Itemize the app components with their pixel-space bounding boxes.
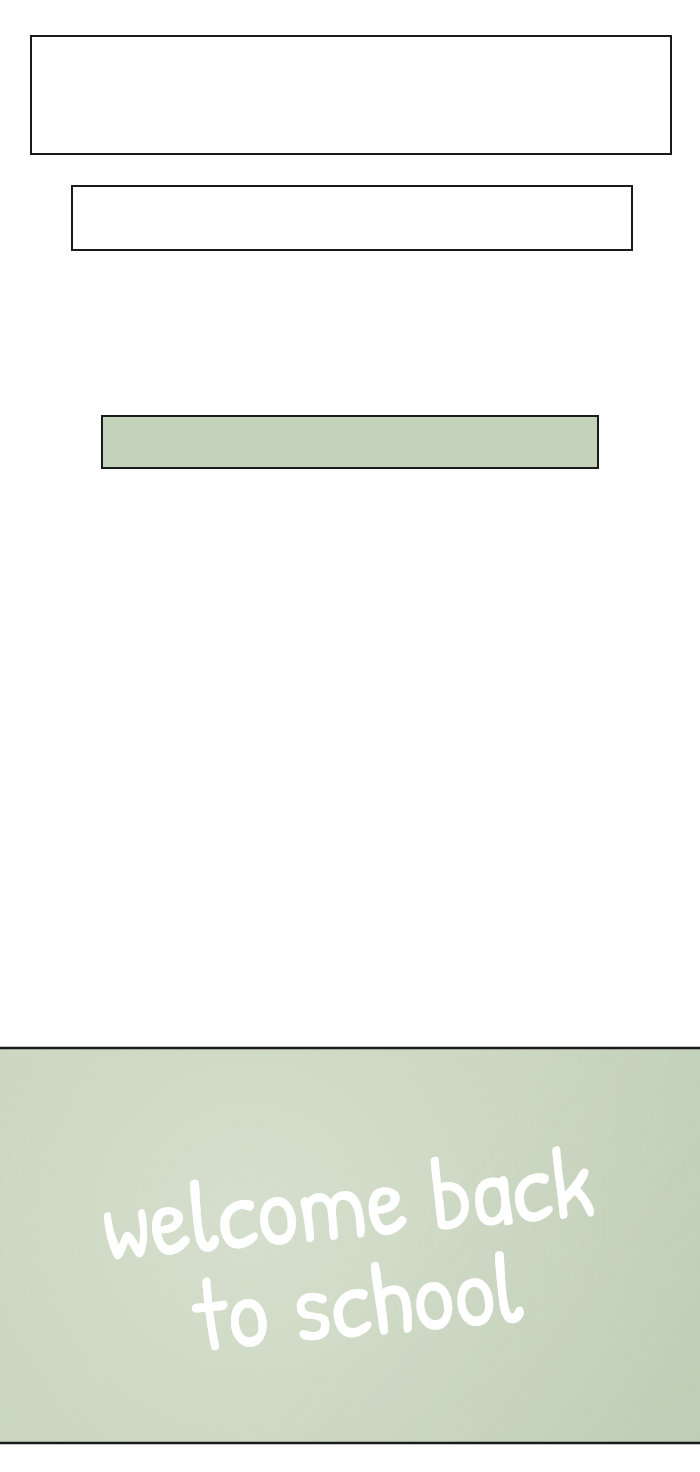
button[interactable]: Subtitle card (71, 185, 633, 251)
button[interactable]: Highlighted card (101, 415, 599, 469)
button[interactable]: Header card (30, 35, 672, 155)
button[interactable]: welcome back to school (0, 1047, 700, 1444)
staticText: welcome back to school (62, 1107, 642, 1394)
